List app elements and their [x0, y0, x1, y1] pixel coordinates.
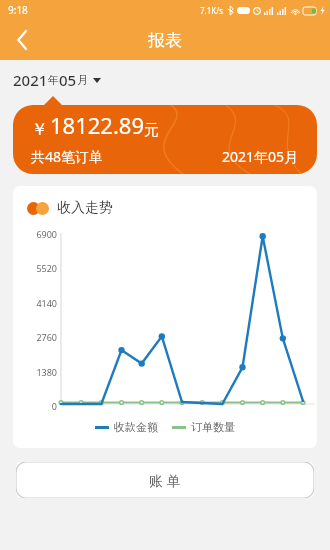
- staticText: 收入走势: [57, 199, 113, 217]
- staticText: 9:18: [8, 3, 28, 17]
- staticText: 7.1K/s: [200, 5, 224, 16]
- staticText: ￥: [31, 119, 48, 140]
- staticText: 共48笔订单: [31, 147, 104, 166]
- staticText: 1380: [36, 366, 57, 377]
- staticText: 订单数量: [191, 420, 235, 434]
- staticText: 收款金额: [114, 420, 158, 434]
- button[interactable]: ￥: [13, 96, 317, 174]
- staticText: 5520: [36, 262, 57, 273]
- staticText: 4140: [36, 297, 57, 308]
- staticText: 18122.89: [50, 110, 144, 140]
- staticText: 05: [59, 70, 77, 90]
- staticText: 2021年05月: [222, 147, 299, 166]
- staticText: 报表: [148, 30, 182, 51]
- staticText: 年: [48, 73, 59, 87]
- staticText: 0: [51, 400, 57, 411]
- staticText: 2021: [13, 70, 48, 90]
- staticText: 2760: [36, 331, 57, 342]
- button[interactable]: Back: [0, 20, 44, 60]
- staticText: 月: [77, 73, 88, 87]
- staticText: 元: [144, 121, 159, 140]
- staticText: 6900: [36, 228, 57, 239]
- staticText: 账 单: [149, 471, 181, 490]
- button[interactable]: 账 单: [16, 462, 314, 498]
- button[interactable]: 2021: [13, 70, 101, 90]
